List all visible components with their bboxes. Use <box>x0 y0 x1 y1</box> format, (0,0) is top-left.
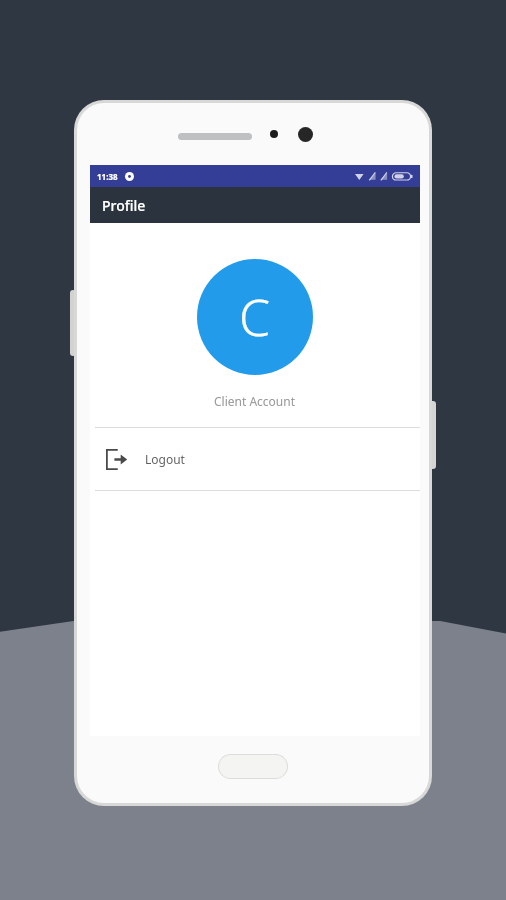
button[interactable]: Home <box>219 755 287 778</box>
staticText: C <box>239 283 271 351</box>
staticText: 11:38 <box>97 171 118 182</box>
staticText: Logout <box>145 451 185 467</box>
staticText: Profile <box>102 196 146 215</box>
button[interactable]: Profile avatar <box>197 259 313 375</box>
button[interactable]: Logout <box>90 428 420 490</box>
staticText: Client Account <box>214 393 296 409</box>
